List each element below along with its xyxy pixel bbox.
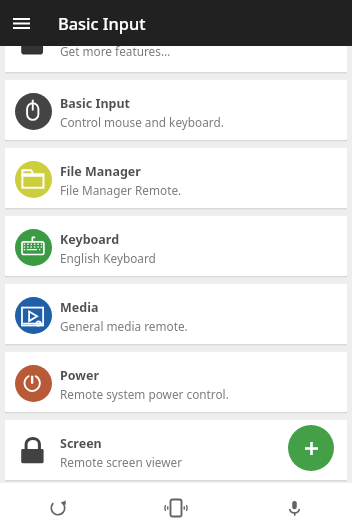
staticText: General media remote. [60, 318, 188, 334]
button[interactable]: Power [5, 352, 347, 412]
staticText: File Manager Remote. [60, 182, 182, 198]
staticText: Media [60, 299, 99, 316]
button[interactable]: Keyboard [5, 216, 347, 276]
staticText: Basic Input [60, 95, 130, 112]
staticText: Get more features… [60, 43, 171, 59]
staticText: Power [60, 367, 100, 384]
button[interactable]: Add [288, 425, 334, 471]
staticText: Control mouse and keyboard. [60, 114, 224, 130]
staticText: Basic Input [58, 12, 146, 34]
button[interactable]: Remote Plus [5, 12, 347, 72]
button[interactable]: Media [5, 284, 347, 344]
button[interactable]: Basic Input [5, 80, 347, 140]
staticText: Keyboard [60, 231, 120, 248]
button[interactable]: Refresh [0, 483, 118, 525]
button[interactable]: Screen [5, 420, 347, 480]
staticText: Remote screen viewer [60, 454, 183, 470]
staticText: English Keyboard [60, 250, 156, 266]
staticText: File Manager [60, 163, 141, 180]
staticText: Screen [60, 435, 102, 452]
button[interactable]: Connected device [118, 483, 235, 525]
staticText: Remote Plus [60, 24, 138, 41]
button[interactable]: Open navigation menu [0, 0, 42, 46]
button[interactable]: Voice input [235, 483, 352, 525]
button[interactable]: File Manager [5, 148, 347, 208]
staticText: Remote system power control. [60, 386, 229, 402]
